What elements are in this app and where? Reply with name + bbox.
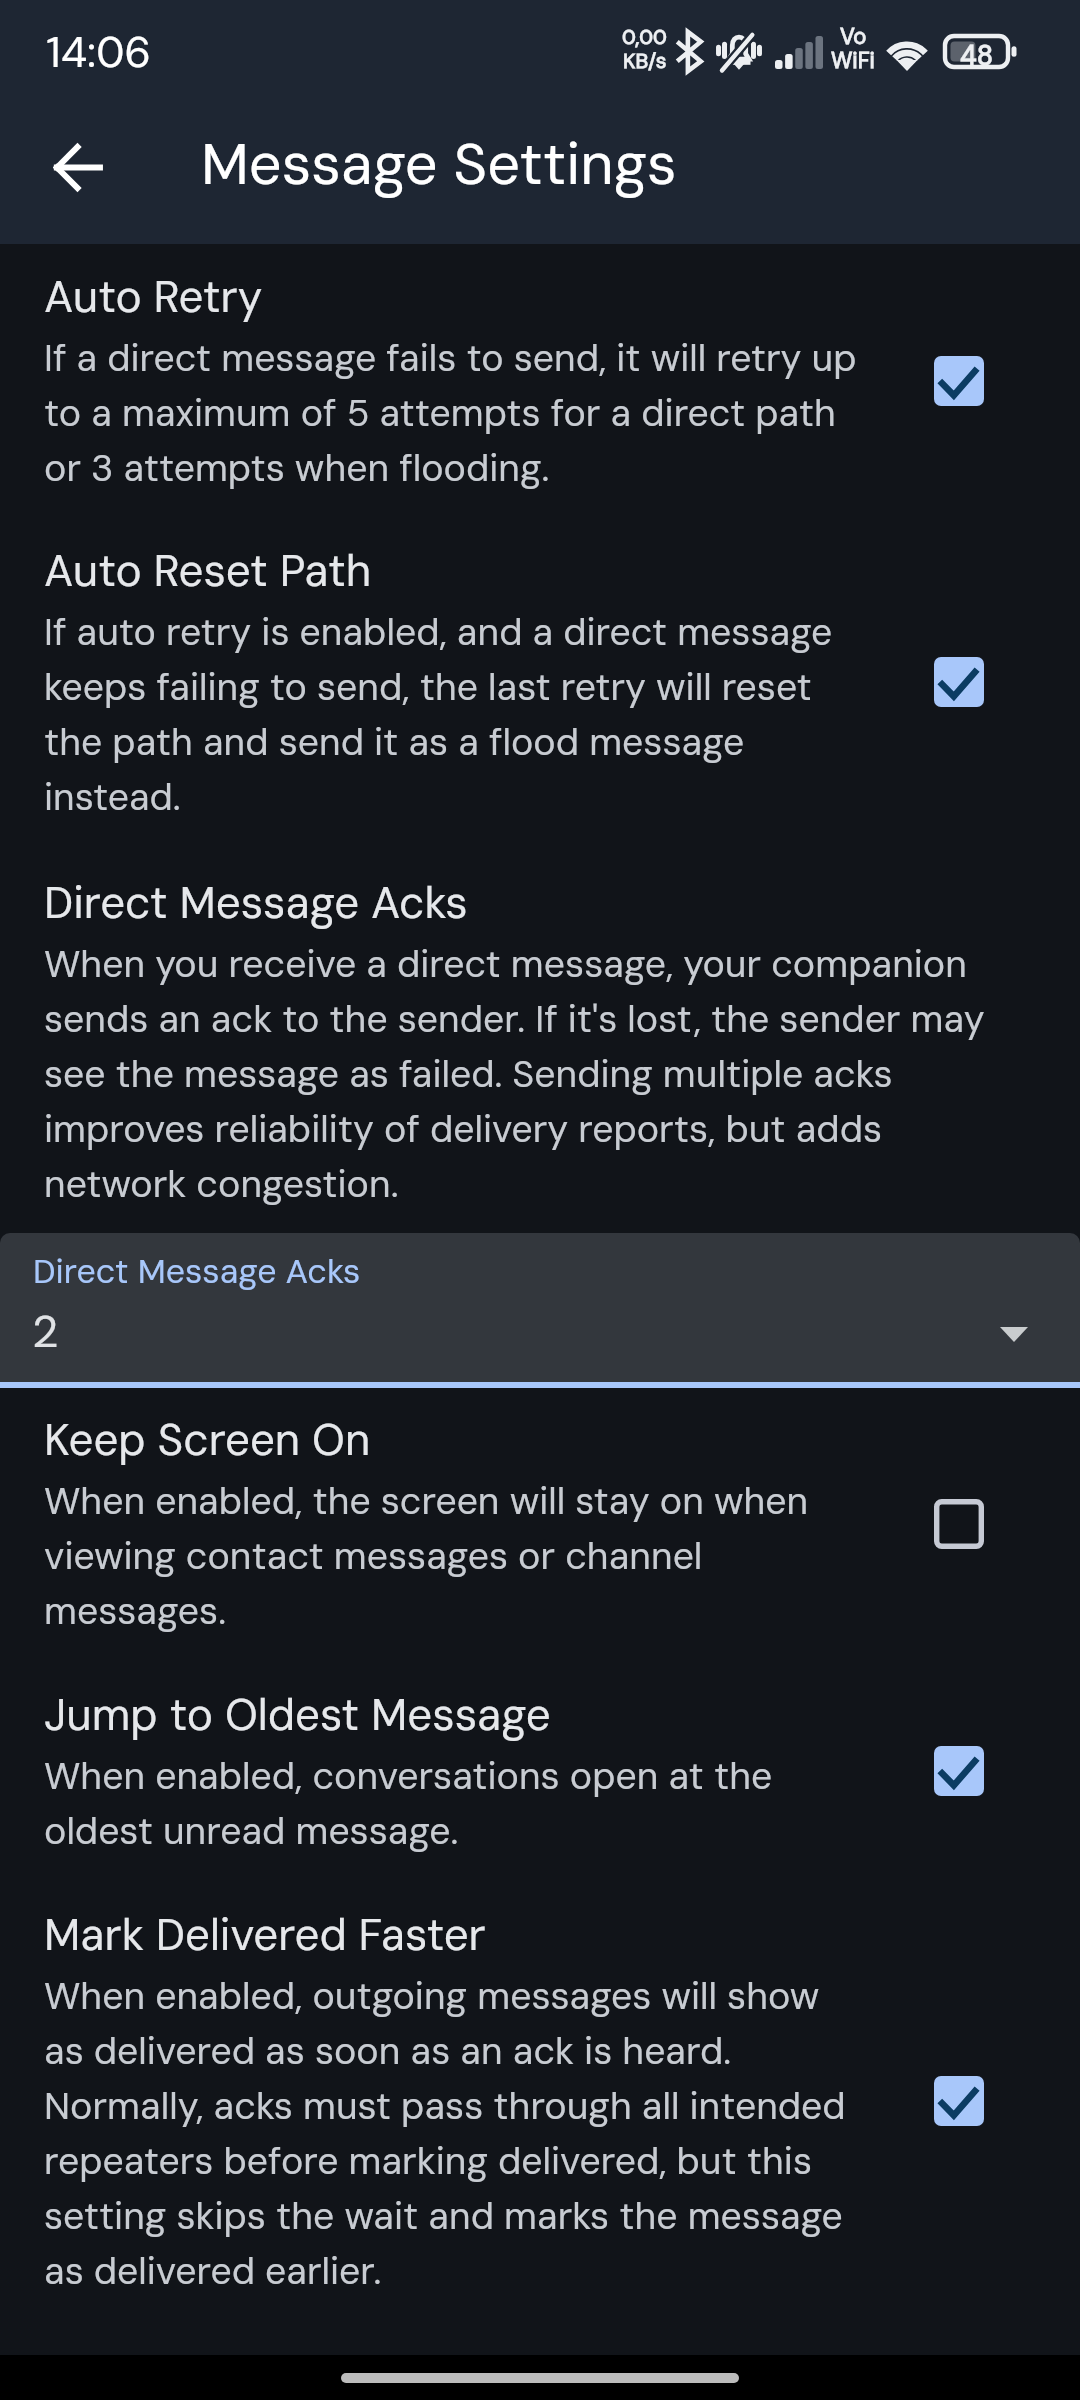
button[interactable]: Keep Screen On [0,1410,1080,1637]
staticText: When you receive a direct message, your … [44,935,1019,1210]
staticText: 48 [955,38,998,73]
staticText: Jump to Oldest Message [44,1686,551,1743]
staticText: If auto retry is enabled, and a direct m… [44,603,864,823]
button[interactable]: Keep Screen On [898,1463,1020,1585]
button[interactable]: Auto Reset Path [0,541,1080,823]
staticText: 14:06 [46,24,152,80]
staticText: Message Settings [201,126,677,202]
button[interactable]: Auto Reset Path [898,621,1020,743]
button[interactable]: Jump to Oldest Message [898,1710,1020,1832]
staticText: Auto Retry [44,268,263,325]
staticText: If a direct message fails to send, it wi… [44,329,864,494]
button[interactable]: Mark Delivered Faster [0,1905,1080,2297]
button[interactable]: Mark Delivered Faster [898,2040,1020,2162]
staticText: Vo [840,26,867,50]
staticText: Mark Delivered Faster [44,1906,486,1963]
staticText: Keep Screen On [44,1411,371,1468]
button[interactable]: Back [23,113,131,221]
button[interactable]: Auto Retry [898,320,1020,442]
staticText: KB/s [623,50,667,74]
staticText: Auto Reset Path [44,542,372,599]
staticText: When enabled, the screen will stay on wh… [44,1472,864,1637]
staticText: WiFi [831,50,875,74]
staticText: 0,00 [622,26,667,50]
button[interactable]: Direct Message Acks [0,1233,1080,1382]
button[interactable]: Auto Retry [0,267,1080,494]
button[interactable]: Direct Message Acks [0,873,1080,1210]
button[interactable]: Jump to Oldest Message [0,1685,1080,1857]
staticText: 2 [32,1302,59,1361]
staticText: Direct Message Acks [33,1249,361,1293]
staticText: Direct Message Acks [44,874,468,931]
staticText: When enabled, outgoing messages will sho… [44,1967,864,2297]
staticText: When enabled, conversations open at the … [44,1747,864,1857]
